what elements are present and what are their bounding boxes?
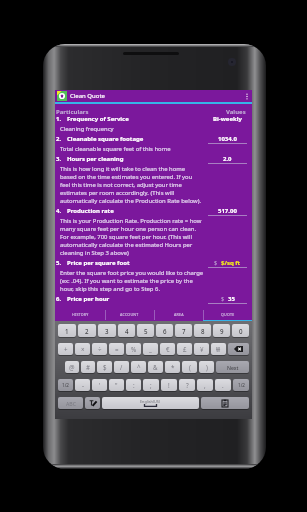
button[interactable]: 1/2 [233,379,249,391]
staticText: 35 [228,295,235,303]
staticText: 4. [56,207,62,215]
button[interactable]: # [81,361,95,373]
staticText: ( [189,363,191,371]
button[interactable]: = [109,343,124,355]
button[interactable]: Enter [201,397,249,409]
staticText: Next [227,364,239,371]
button[interactable]: 2. [55,135,252,155]
staticText: 2. [56,135,62,143]
button[interactable]: ¥ [194,343,209,355]
button[interactable]: - [75,379,90,391]
button[interactable]: HISTORY [55,308,105,321]
button[interactable]: Backspace [228,343,249,355]
button[interactable]: ' [92,379,107,391]
button[interactable]: % [126,343,141,355]
button[interactable]: 2 [78,324,96,337]
staticText: Frequency of Service [67,115,129,123]
staticText: ACCOUNT [120,312,139,317]
staticText: 6. [56,295,62,303]
button[interactable]: , [197,379,213,391]
staticText: Bi-weekly [213,115,242,123]
button[interactable]: 7 [175,324,192,337]
button[interactable]: ABC [58,397,83,409]
button[interactable]: 4 [118,324,135,337]
staticText: # [86,363,90,371]
button[interactable]: $ [97,361,112,373]
button[interactable]: ? [179,379,195,391]
button[interactable]: 9 [213,324,230,337]
button[interactable]: 4. [55,207,252,259]
button[interactable]: / [114,361,129,373]
staticText: + [64,345,68,353]
button[interactable]: " [109,379,124,391]
button[interactable]: 0 [232,324,249,337]
staticText: ; [150,381,152,389]
button[interactable]: ^ [131,361,146,373]
staticText: $/sq ft [221,259,241,267]
staticText: 517.00 [218,207,237,215]
button[interactable]: 3. [55,155,252,207]
staticText: 8 [201,327,205,335]
button[interactable]: × [75,343,90,355]
button[interactable]: ) [199,361,214,373]
staticText: $ [221,295,225,303]
button[interactable]: 6 [156,324,173,337]
staticText: 9 [220,327,224,335]
staticText: ÷ [98,345,102,353]
staticText: _ [149,345,152,353]
staticText: 7 [182,327,186,335]
button[interactable]: 1 [58,324,76,337]
button[interactable]: ₩ [211,343,226,355]
button[interactable]: £ [177,343,192,355]
staticText: 5. [56,259,62,267]
button[interactable]: Handwriting input [85,397,100,409]
button[interactable]: QUOTE [203,308,252,321]
staticText: Cleanable square footage [67,135,144,143]
button[interactable]: & [148,361,163,373]
button[interactable]: _ [143,343,158,355]
button[interactable]: 6. [55,295,252,305]
button[interactable]: . [215,379,231,391]
button[interactable]: + [58,343,73,355]
button[interactable]: Next [216,361,249,373]
staticText: 4 [125,327,129,335]
staticText: 5 [144,327,148,335]
staticText: * [171,363,175,371]
button[interactable]: 1. [55,115,252,135]
button[interactable]: 3 [98,324,116,337]
staticText: 3 [105,327,109,335]
button[interactable]: ACCOUNT [105,308,154,321]
staticText: Clean Quote [70,92,105,100]
button[interactable]: * [165,361,180,373]
staticText: Price per hour [67,295,110,303]
staticText: 1034.0 [218,135,237,143]
button[interactable]: : [126,379,141,391]
staticText: ^ [137,363,141,371]
staticText: ! [168,381,170,389]
staticText: × [81,345,85,353]
staticText: : [133,381,135,389]
button[interactable]: AREA [154,308,203,321]
staticText: Cleaning frequency [60,125,218,133]
button[interactable]: ÷ [92,343,107,355]
button[interactable]: 5 [137,324,154,337]
staticText: 0 [239,327,243,335]
staticText: HISTORY [72,312,89,317]
button[interactable]: ; [143,379,159,391]
staticText: £ [183,345,187,353]
staticText: 2 [85,327,89,335]
button[interactable]: More options [242,90,252,102]
button[interactable]: @ [65,361,79,373]
staticText: Total cleanable square feet of this home [60,145,218,153]
staticText: ' [99,381,101,389]
button[interactable]: 8 [194,324,211,337]
staticText: € [166,345,170,353]
button[interactable]: English(US) [102,397,199,409]
button[interactable]: € [160,343,175,355]
button[interactable]: ! [161,379,177,391]
button[interactable]: 5. [55,259,252,295]
button[interactable]: 1/2 [58,379,73,391]
button[interactable]: ( [182,361,197,373]
staticText: = [115,345,119,353]
staticText: 2.0 [223,155,232,163]
